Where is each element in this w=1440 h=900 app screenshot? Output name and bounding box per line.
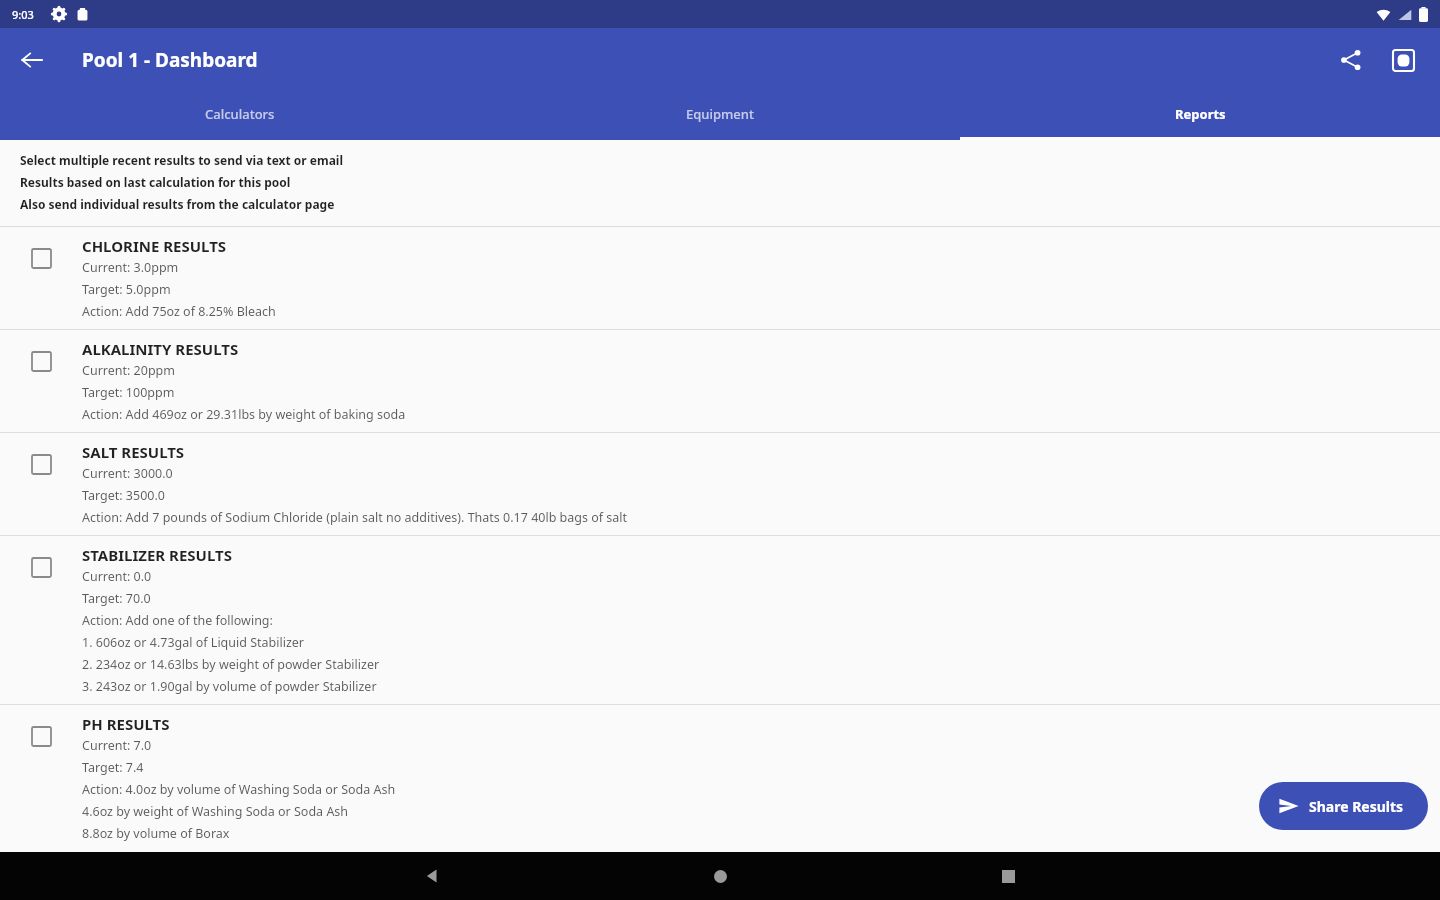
button[interactable]: Select ALKALINITY RESULTS [24,344,58,378]
button[interactable]: Select SALT RESULTS [0,433,1440,535]
staticText: Action: Add one of the following: [82,612,273,629]
button[interactable]: Select SALT RESULTS [24,447,58,481]
button[interactable]: Share Results [1259,782,1428,830]
staticText: PH RESULTS [82,714,170,734]
staticText: 4.6oz by weight of Washing Soda or Soda … [82,803,349,820]
staticText: 1. 606oz or 4.73gal of Liquid Stabilizer [82,634,305,651]
button[interactable]: Share [1328,37,1374,83]
button[interactable]: Select ALKALINITY RESULTS [0,330,1440,432]
staticText: Action: Add 469oz or 29.31lbs by weight … [82,406,406,423]
staticText: CHLORINE RESULTS [82,236,227,256]
staticText: Target: 100ppm [82,384,175,401]
button[interactable]: Save [1380,37,1426,83]
button[interactable]: Recents [864,852,1152,900]
staticText: 8.8oz by volume of Borax [82,825,230,842]
staticText: Action: Add 7 pounds of Sodium Chloride … [82,509,628,526]
button[interactable]: Back [288,852,576,900]
staticText: Reports [1175,105,1226,123]
staticText: Also send individual results from the ca… [20,196,335,212]
staticText: Current: 3.0ppm [82,259,179,276]
button[interactable]: Select PH RESULTS [0,705,1440,852]
button[interactable]: Select PH RESULTS [24,719,58,753]
staticText: Select multiple recent results to send v… [20,152,344,168]
staticText: Current: 7.0 [82,737,152,754]
button[interactable]: Select STABILIZER RESULTS [24,550,58,584]
button[interactable]: Equipment [480,92,960,140]
staticText: 2. 234oz or 14.63lbs by weight of powder… [82,656,380,673]
button[interactable]: Home [576,852,864,900]
staticText: Target: 3500.0 [82,487,165,504]
button[interactable]: Calculators [0,92,480,140]
staticText: Target: 5.0ppm [82,281,171,298]
staticText: Current: 3000.0 [82,465,173,482]
staticText: Target: 70.0 [82,590,151,607]
staticText: SALT RESULTS [82,442,185,462]
staticText: Target: 7.4 [82,759,144,776]
button[interactable]: Reports [960,92,1440,140]
button[interactable]: Select CHLORINE RESULTS [24,241,58,275]
staticText: Calculators [205,105,275,123]
staticText: Share Results [1309,797,1404,816]
button[interactable]: Select STABILIZER RESULTS [0,536,1440,704]
staticText: Equipment [686,105,754,123]
staticText: STABILIZER RESULTS [82,545,232,565]
staticText: Current: 20ppm [82,362,175,379]
staticText: Action: Add 75oz of 8.25% Bleach [82,303,276,320]
staticText: Action: 4.0oz by volume of Washing Soda … [82,781,396,798]
staticText: Results based on last calculation for th… [20,174,291,190]
staticText: Pool 1 - Dashboard [82,47,258,73]
staticText: 9:03 [12,7,34,22]
button[interactable]: Back [10,38,54,82]
button[interactable]: Select CHLORINE RESULTS [0,227,1440,329]
staticText: ALKALINITY RESULTS [82,339,239,359]
staticText: 3. 243oz or 1.90gal by volume of powder … [82,678,377,695]
staticText: Current: 0.0 [82,568,152,585]
